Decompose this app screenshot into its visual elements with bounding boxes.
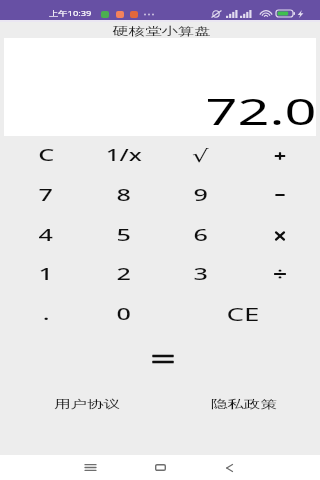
staticText: 3 (193, 262, 208, 285)
button[interactable]: 隐私政策 (203, 391, 285, 417)
button[interactable]: 4 (7, 215, 85, 254)
button[interactable]: Multiply (241, 216, 319, 255)
staticText: 硬核堂小算盘 (112, 25, 211, 39)
staticText: 1 (38, 262, 53, 285)
button[interactable]: Home (144, 455, 176, 480)
button[interactable]: Recent apps (74, 455, 106, 480)
button[interactable]: 1 (7, 254, 85, 293)
button[interactable]: Equals (130, 340, 196, 378)
staticText: 1/x (106, 144, 143, 166)
staticText: 5 (116, 223, 131, 246)
button[interactable]: 2 (85, 254, 163, 293)
button[interactable]: 3 (162, 254, 240, 293)
button[interactable]: Plus (241, 136, 319, 175)
staticText: 用户协议 (54, 397, 120, 411)
button[interactable]: 1/x (85, 135, 163, 174)
button[interactable]: Divide (241, 254, 319, 293)
button[interactable]: C (7, 135, 85, 174)
button[interactable]: 7 (7, 175, 85, 214)
staticText: 6 (193, 223, 208, 246)
button[interactable]: 硬核堂小算盘 (2, 23, 320, 41)
button[interactable]: . (7, 294, 85, 333)
staticText: CE (226, 301, 259, 326)
button[interactable]: 0 (85, 294, 163, 333)
button[interactable]: 5 (85, 215, 163, 254)
staticText: 隐私政策 (211, 397, 277, 411)
staticText: 7 (38, 183, 53, 206)
staticText: 9 (193, 183, 208, 206)
staticText: 上午10:39 (49, 9, 92, 18)
button[interactable]: √ (162, 136, 240, 175)
button[interactable]: 8 (85, 175, 163, 214)
staticText: 8 (116, 183, 131, 206)
staticText: 72.0 (205, 85, 316, 125)
button[interactable]: Minus (241, 175, 319, 214)
button[interactable]: 6 (162, 215, 240, 254)
staticText: C (38, 143, 55, 166)
staticText: 2 (116, 262, 131, 285)
button[interactable]: 9 (162, 175, 240, 214)
staticText: . (43, 302, 50, 325)
button[interactable]: Back (213, 455, 245, 480)
staticText: 0 (116, 302, 131, 325)
button[interactable]: CE (165, 294, 320, 333)
staticText: √ (192, 146, 210, 166)
staticText: 4 (38, 223, 53, 246)
button[interactable]: 用户协议 (46, 391, 128, 417)
